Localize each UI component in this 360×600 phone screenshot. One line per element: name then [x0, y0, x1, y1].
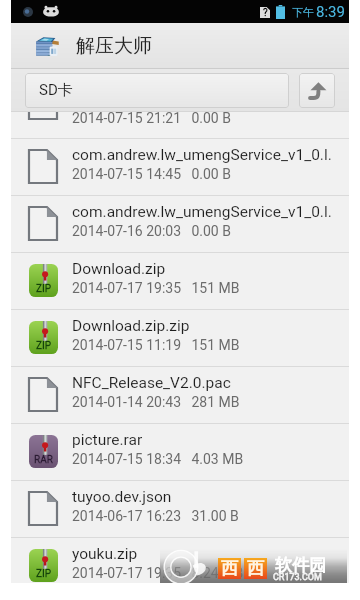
staticText: SD卡 — [39, 81, 73, 100]
staticText: ZIP — [36, 340, 52, 352]
button[interactable]: Up one level — [299, 73, 335, 108]
button[interactable]: RAR — [11, 424, 349, 480]
staticText: 2014-07-15 18:34 4.03 MB — [72, 451, 244, 467]
staticText: com.andrew.lw_umengService_v1_0.l. — [72, 146, 332, 164]
staticText: 软件园 — [275, 555, 326, 576]
staticText: 2014-07-15 11:19 151 MB — [72, 337, 240, 353]
button[interactable]: ZIP — [11, 538, 349, 583]
staticText: Download.zip.zip — [72, 317, 190, 335]
staticText: youku.zip — [72, 545, 138, 563]
button[interactable]: tuyoo.dev.json — [11, 481, 349, 537]
staticText: 解压大师 — [76, 34, 152, 58]
button[interactable]: ZIP — [11, 253, 349, 309]
staticText: 8:39 — [316, 3, 345, 21]
staticText: tuyoo.dev.json — [72, 488, 172, 506]
staticText: 2014-07-16 20:03 0.00 B — [72, 223, 231, 239]
button[interactable]: NFC_Release_V2.0.pac — [11, 367, 349, 423]
staticText: 下午 — [292, 5, 314, 19]
staticText: 2014-07-15 14:45 0.00 B — [72, 166, 231, 182]
staticText: 2014-07-15 21:21 0.00 B — [72, 112, 231, 126]
staticText: 西 — [221, 558, 238, 579]
staticText: CR173.COM — [273, 572, 322, 583]
button[interactable]: SD卡 — [25, 73, 289, 108]
staticText: ZIP — [36, 568, 52, 580]
staticText: 2014-07-17 19:35 8.24 MB — [72, 565, 244, 581]
staticText: com.andrew.lw_umengService_v1_0.l. — [72, 203, 332, 221]
staticText: ZIP — [36, 283, 52, 295]
button[interactable]: ZIP — [11, 310, 349, 366]
button[interactable]: 2014-07-15 21:21 0.00 B — [11, 112, 349, 138]
staticText: Download.zip — [72, 260, 166, 278]
button[interactable]: com.andrew.lw_umengService_v1_0.l. — [11, 139, 349, 195]
staticText: NFC_Release_V2.0.pac — [72, 374, 231, 392]
staticText: picture.rar — [72, 431, 143, 449]
staticText: 2014-07-17 19:35 151 MB — [72, 280, 240, 296]
staticText: 西 — [247, 558, 264, 579]
staticText: 2014-06-17 16:23 31.00 B — [72, 508, 239, 524]
staticText: 2014-01-14 20:43 281 MB — [72, 394, 240, 410]
button[interactable]: com.andrew.lw_umengService_v1_0.l. — [11, 196, 349, 252]
staticText: ? — [263, 7, 268, 18]
staticText: RAR — [34, 454, 53, 466]
